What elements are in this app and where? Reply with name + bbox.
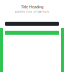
- staticText: subtitle line of text here: [14, 10, 49, 14]
- staticText: Title Heading: [21, 4, 43, 9]
